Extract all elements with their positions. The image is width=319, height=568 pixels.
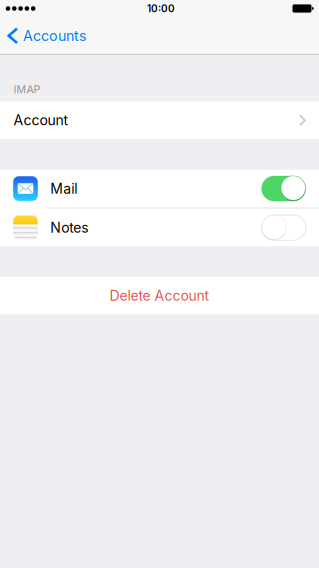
staticText: IMAP (13, 83, 40, 96)
staticText: Delete Account (109, 287, 209, 304)
button[interactable]: Notes (0, 209, 319, 246)
staticText: Account (13, 112, 68, 129)
staticText: 10:00 (147, 2, 175, 15)
staticText: Notes (50, 219, 88, 236)
button[interactable]: Mail (0, 170, 319, 207)
staticText: Mail (50, 180, 77, 197)
button[interactable]: Account (0, 101, 319, 139)
button[interactable]: Accounts (0, 17, 97, 54)
button[interactable]: Delete Account (0, 277, 319, 314)
staticText: Accounts (23, 27, 87, 44)
